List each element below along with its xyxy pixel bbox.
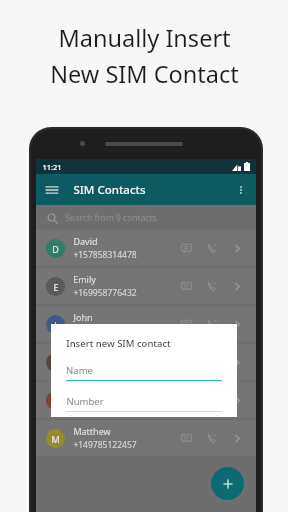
staticText: 11:21 (42, 162, 62, 172)
button[interactable]: L (36, 344, 256, 380)
button[interactable]: Details (228, 353, 246, 371)
button[interactable]: Call (202, 314, 222, 334)
staticText: Manually Insert (58, 22, 231, 54)
staticText: SIM Contacts (73, 182, 146, 198)
staticText: Number (66, 395, 104, 408)
button[interactable]: E (36, 268, 256, 304)
button[interactable]: Send message (176, 314, 196, 334)
staticText: E (53, 281, 59, 293)
button[interactable]: Menu (36, 174, 67, 205)
button[interactable]: Search from 9 contacts (36, 205, 256, 230)
button[interactable]: Add contact (211, 467, 244, 500)
staticText: J (54, 319, 57, 331)
button[interactable]: More options (225, 174, 256, 205)
staticText: David (73, 235, 98, 247)
staticText: New SIM Contact (50, 58, 239, 90)
button[interactable]: Details (228, 429, 246, 447)
button[interactable]: Call (202, 428, 222, 448)
button[interactable]: D (36, 230, 256, 266)
staticText: +147658774136 (73, 363, 137, 375)
staticText: +169958776432 (73, 287, 137, 299)
button[interactable]: J (36, 306, 256, 342)
staticText: Emily (73, 273, 96, 285)
staticText: Matthew (73, 425, 111, 437)
button[interactable]: Details (228, 239, 246, 257)
button[interactable]: L (36, 382, 256, 418)
button[interactable]: Details (228, 277, 246, 295)
button[interactable]: Send message (176, 276, 196, 296)
staticText: +147758966478 (73, 401, 137, 413)
button[interactable]: Send message (176, 428, 196, 448)
staticText: Search from 9 contacts (65, 212, 157, 224)
staticText: +149785122457 (73, 439, 137, 451)
staticText: D (52, 243, 59, 255)
button[interactable]: Details (228, 391, 246, 409)
button[interactable]: Call (202, 276, 222, 296)
staticText: Lingli (73, 387, 96, 399)
staticText: Name (66, 364, 93, 377)
staticText: John (73, 311, 93, 323)
button[interactable]: Details (228, 315, 246, 333)
staticText: Insert new SIM contact (66, 337, 171, 350)
staticText: M (51, 433, 60, 445)
button[interactable]: Send message (176, 238, 196, 258)
staticText: +157858314478 (73, 249, 137, 261)
button[interactable]: Call (202, 238, 222, 258)
button[interactable]: M (36, 420, 256, 456)
